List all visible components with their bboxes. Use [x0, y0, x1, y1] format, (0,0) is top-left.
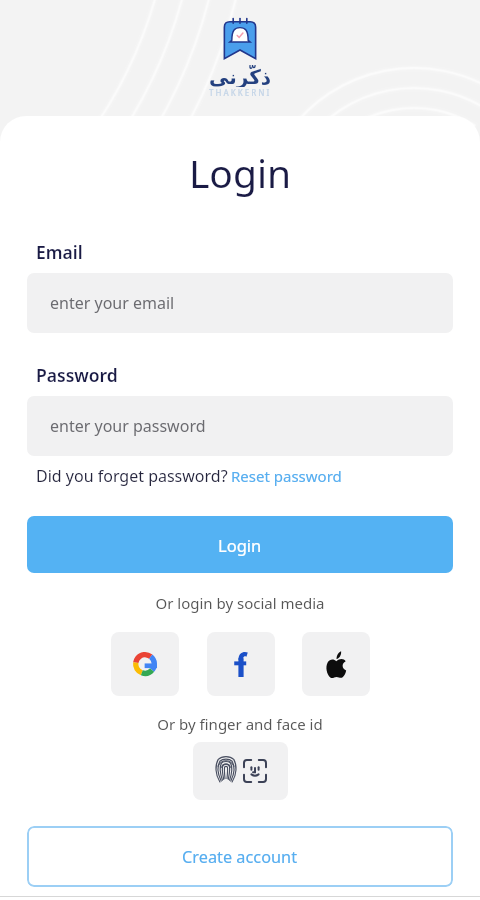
button[interactable]: Sign in with Apple — [302, 632, 370, 696]
staticText: Password — [36, 363, 118, 387]
staticText: enter your password — [50, 415, 206, 437]
staticText: Or by finger and face id — [27, 714, 453, 734]
button[interactable]: Create account — [27, 826, 453, 887]
staticText: Login — [218, 534, 262, 556]
staticText: ذكّرني — [209, 65, 272, 87]
staticText: Reset password — [231, 466, 342, 486]
button[interactable]: Sign in with Google — [111, 632, 179, 696]
button[interactable]: enter your email — [27, 273, 453, 333]
staticText: Email — [36, 240, 83, 264]
staticText: Did you forget password? — [36, 465, 228, 487]
staticText: Create account — [182, 846, 298, 868]
button[interactable]: enter your password — [27, 396, 453, 456]
button[interactable]: Sign in with Facebook — [207, 632, 275, 696]
button[interactable]: Login — [27, 516, 453, 573]
staticText: THAKKERNI — [209, 87, 272, 98]
button[interactable]: Sign in with fingerprint or face id — [193, 742, 288, 800]
button[interactable]: Reset password — [231, 466, 342, 486]
staticText: Or login by social media — [27, 593, 453, 613]
staticText: Login — [27, 146, 453, 199]
staticText: enter your email — [50, 292, 175, 314]
